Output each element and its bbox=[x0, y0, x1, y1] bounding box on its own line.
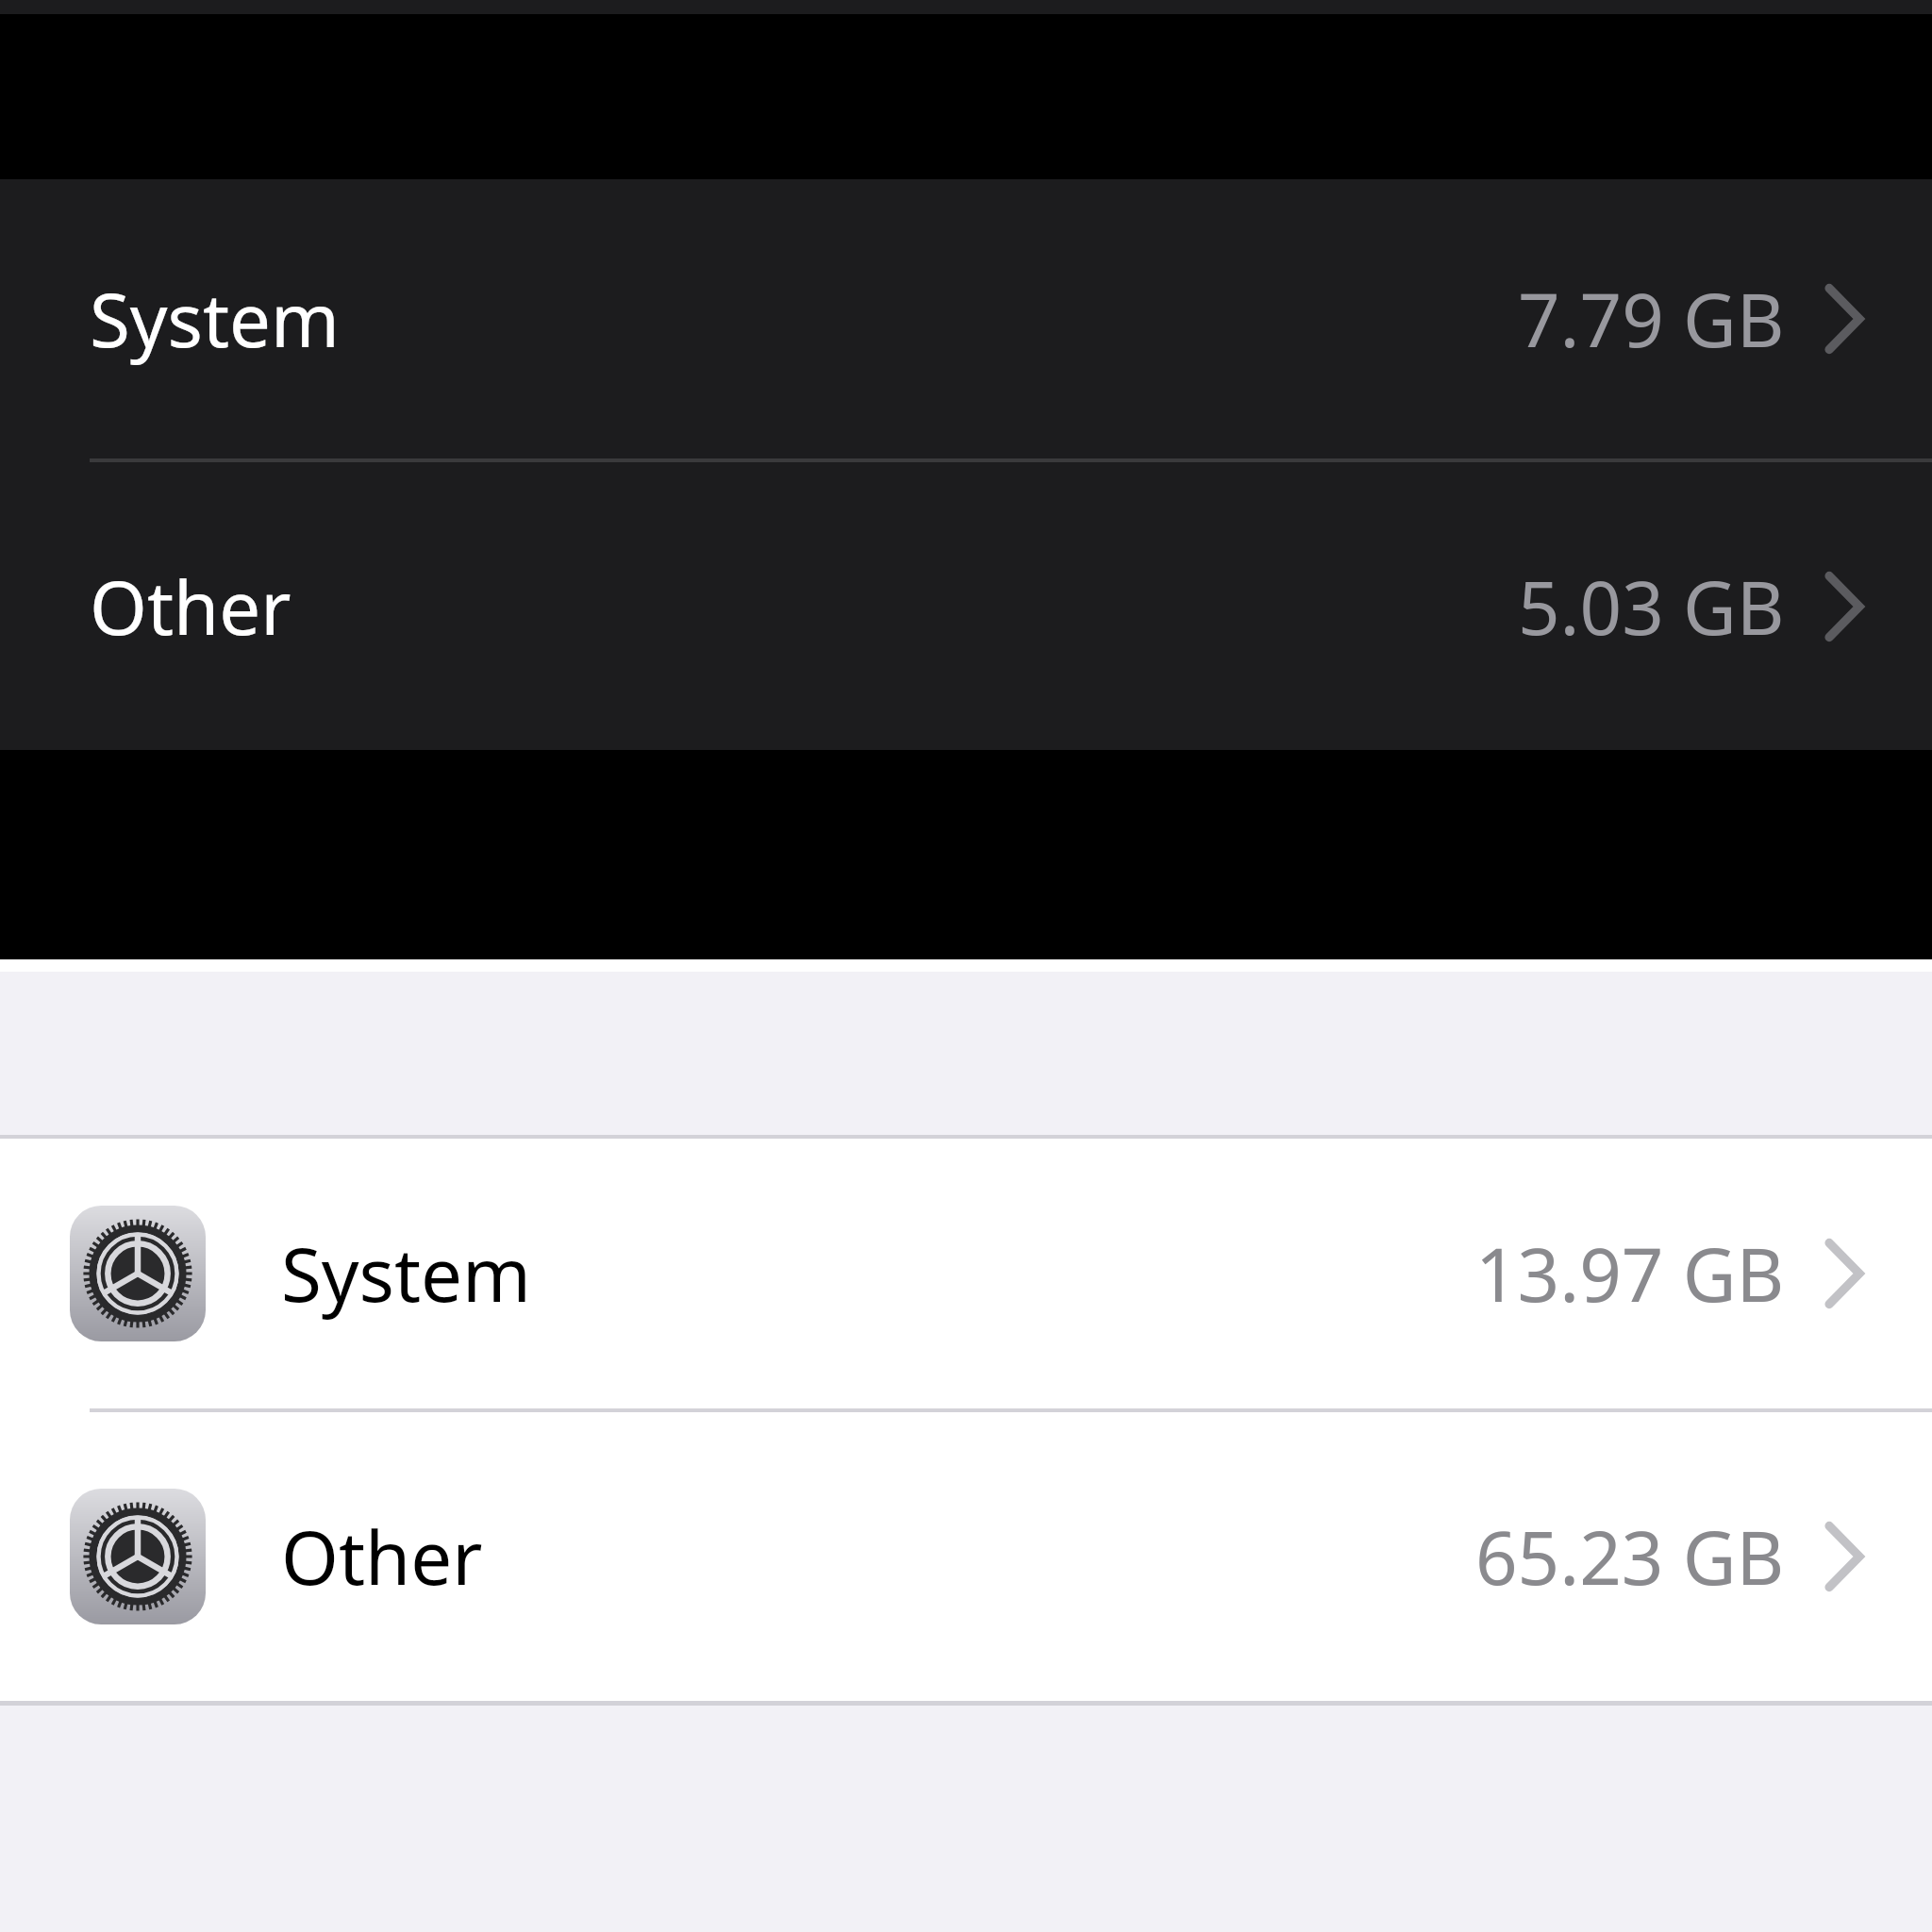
button[interactable]: Other bbox=[0, 1412, 1932, 1701]
staticText: System bbox=[281, 1224, 532, 1324]
button[interactable]: System bbox=[0, 179, 1932, 458]
staticText: 65.23 GB bbox=[1475, 1507, 1785, 1607]
staticText: 5.03 GB bbox=[1518, 557, 1785, 657]
staticText: 13.97 GB bbox=[1475, 1224, 1785, 1324]
staticText: Other bbox=[90, 557, 291, 657]
button[interactable]: System bbox=[0, 1139, 1932, 1408]
staticText: System bbox=[90, 269, 341, 369]
staticText: Other bbox=[281, 1507, 483, 1607]
staticText: 7.79 GB bbox=[1518, 269, 1785, 369]
button[interactable]: Other bbox=[0, 462, 1932, 750]
